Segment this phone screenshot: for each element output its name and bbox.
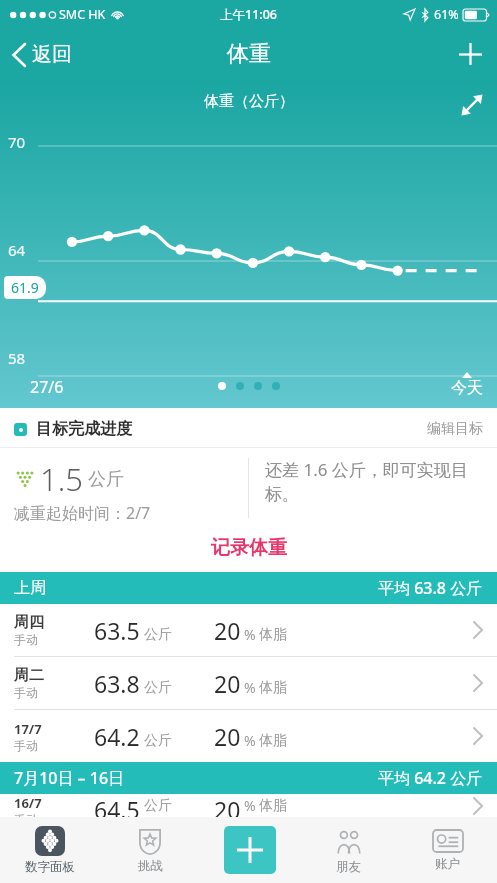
- staticText: 平均 63.8 公斤: [378, 577, 483, 599]
- button[interactable]: Add: [224, 826, 276, 874]
- staticText: 17/7: [14, 720, 42, 738]
- staticText: 公斤: [144, 797, 172, 815]
- staticText: 平均 64.2 公斤: [378, 767, 483, 789]
- staticText: 手动: [14, 812, 38, 817]
- staticText: 体重（公斤）: [204, 92, 294, 111]
- staticText: %: [244, 796, 256, 815]
- staticText: 手动: [14, 632, 38, 647]
- staticText: 手动: [14, 738, 38, 753]
- button[interactable]: 朋友: [299, 817, 398, 883]
- staticText: 手动: [14, 685, 38, 700]
- staticText: 体脂: [259, 626, 287, 644]
- staticText: 数字面板: [25, 859, 75, 875]
- staticText: 20: [214, 615, 241, 646]
- staticText: 周二: [14, 666, 44, 685]
- staticText: 上周: [14, 578, 46, 598]
- button[interactable]: 账户: [398, 817, 497, 883]
- button[interactable]: Add: [444, 28, 497, 80]
- staticText: 7月10日 – 16日: [14, 767, 125, 789]
- staticText: 70: [8, 132, 26, 152]
- button[interactable]: 周四: [0, 604, 497, 656]
- staticText: 体脂: [259, 732, 287, 750]
- staticText: %: [244, 625, 256, 644]
- staticText: 周四: [14, 613, 44, 632]
- staticText: 目标完成进度: [36, 419, 132, 439]
- staticText: 公斤: [144, 679, 172, 697]
- staticText: 体脂: [259, 679, 287, 697]
- staticText: 64.2: [94, 721, 140, 752]
- staticText: 27/6: [30, 376, 64, 398]
- staticText: 体脂: [259, 797, 287, 815]
- staticText: 体重: [227, 40, 271, 68]
- staticText: 64.5: [94, 794, 140, 817]
- staticText: %: [244, 731, 256, 750]
- staticText: 公斤: [144, 626, 172, 644]
- staticText: 减重起始时间：2/7: [14, 502, 151, 524]
- button[interactable]: 编辑目标: [427, 420, 483, 438]
- staticText: 63.8: [94, 668, 140, 699]
- staticText: 公斤: [144, 732, 172, 750]
- staticText: %: [244, 678, 256, 697]
- staticText: 今天: [451, 378, 483, 398]
- staticText: 63.5: [94, 615, 140, 646]
- button[interactable]: 16/7: [0, 794, 497, 817]
- staticText: 64: [8, 240, 26, 260]
- button[interactable]: Expand: [447, 80, 497, 130]
- staticText: 公斤: [88, 468, 124, 491]
- button[interactable]: 周二: [0, 657, 497, 709]
- button[interactable]: 数字面板: [0, 817, 100, 883]
- staticText: 编辑目标: [427, 420, 483, 438]
- staticText: 58: [8, 348, 26, 368]
- staticText: 记录体重: [211, 536, 287, 560]
- staticText: 1.5: [40, 458, 83, 500]
- button[interactable]: 返回: [0, 36, 84, 73]
- staticText: 账户: [435, 856, 460, 872]
- staticText: 61%: [434, 6, 459, 23]
- button[interactable]: 17/7: [0, 710, 497, 762]
- staticText: 朋友: [336, 859, 361, 875]
- staticText: 还差 1.6 公斤，即可实现目标。: [265, 458, 485, 505]
- button[interactable]: 记录体重: [0, 524, 497, 572]
- staticText: 20: [214, 794, 241, 817]
- staticText: 20: [214, 721, 241, 752]
- staticText: 61.9: [11, 278, 39, 297]
- staticText: 挑战: [138, 858, 163, 874]
- staticText: SMC HK: [59, 6, 106, 23]
- staticText: 上午11:06: [220, 6, 278, 23]
- button[interactable]: 挑战: [100, 817, 200, 883]
- staticText: 20: [214, 668, 241, 699]
- staticText: 16/7: [14, 794, 42, 812]
- staticText: 返回: [32, 42, 72, 67]
